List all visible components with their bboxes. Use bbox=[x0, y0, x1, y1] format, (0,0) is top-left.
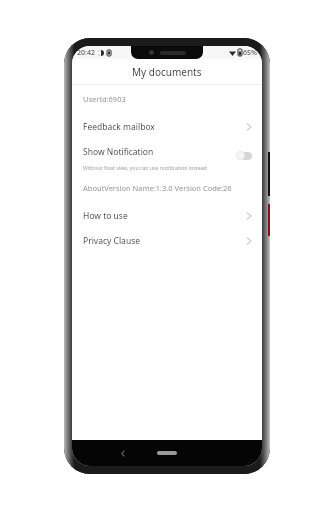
staticText: Show Notification bbox=[83, 146, 154, 158]
staticText: Feedback mailbox bbox=[83, 121, 155, 133]
button[interactable]: Privacy Clause bbox=[72, 228, 262, 253]
button[interactable]: Show Notification bbox=[72, 139, 262, 164]
staticText: How to use bbox=[83, 210, 128, 222]
staticText: My documents bbox=[132, 65, 202, 79]
button[interactable]: Home bbox=[155, 448, 179, 458]
staticText: AboutVersion Name:1.3.0 Version Code:26 bbox=[83, 183, 232, 193]
button[interactable]: How to use bbox=[72, 203, 262, 228]
button[interactable]: Back bbox=[116, 446, 130, 460]
staticText: 20:42 bbox=[77, 48, 95, 58]
staticText: Privacy Clause bbox=[83, 235, 141, 247]
staticText: Without float view, you can use notifica… bbox=[83, 164, 207, 171]
staticText: 65% bbox=[243, 48, 257, 58]
button[interactable]: Feedback mailbox bbox=[72, 114, 262, 139]
staticText: UserId:6903 bbox=[83, 94, 126, 104]
